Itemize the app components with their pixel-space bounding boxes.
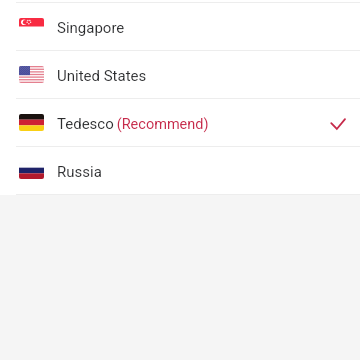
staticText: Russia: [57, 163, 102, 181]
staticText: United States: [57, 67, 147, 85]
staticText: Singapore: [57, 19, 125, 37]
other: Selected: [329, 117, 345, 129]
staticText: Tedesco (Recommend): [57, 115, 209, 133]
button[interactable]: Singapore: [0, 3, 360, 50]
button[interactable]: Russia: [0, 147, 360, 194]
button[interactable]: Tedesco (Recommend): [0, 99, 360, 146]
button[interactable]: United States: [0, 51, 360, 98]
